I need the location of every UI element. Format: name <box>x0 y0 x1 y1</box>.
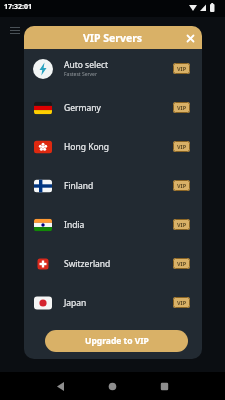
button[interactable]: Upgrade to VIP <box>45 330 188 352</box>
staticText: VIP <box>177 104 187 111</box>
staticText: Finland <box>64 180 94 192</box>
staticText: VIP <box>177 260 187 267</box>
staticText: Hong Kong <box>64 141 110 153</box>
button[interactable]: Japan <box>24 283 202 322</box>
staticText: VIP <box>177 299 187 306</box>
button[interactable] <box>160 382 169 391</box>
button[interactable] <box>108 382 117 391</box>
staticText: Upgrade to VIP <box>85 335 149 347</box>
button[interactable]: Hong Kong <box>24 127 202 166</box>
staticText: 17:32:01 <box>4 2 32 12</box>
button[interactable]: Switzerland <box>24 244 202 283</box>
staticText: VIP Servers <box>83 31 143 45</box>
staticText: Germany <box>64 102 101 114</box>
staticText: VIP <box>177 143 187 150</box>
button[interactable]: Finland <box>24 166 202 205</box>
button[interactable] <box>56 382 65 391</box>
staticText: Japan <box>64 297 87 309</box>
staticText: Auto select <box>64 59 109 71</box>
button[interactable]: Germany <box>24 88 202 127</box>
button[interactable]: India <box>24 205 202 244</box>
staticText: VIP <box>177 65 187 72</box>
staticText: Switzerland <box>64 258 111 270</box>
staticText: VIP <box>177 182 187 189</box>
button[interactable]: Auto select <box>24 49 202 88</box>
staticText: Fastest Server <box>64 71 97 78</box>
button[interactable] <box>183 31 197 45</box>
staticText: India <box>64 219 85 231</box>
staticText: VIP <box>177 221 187 228</box>
